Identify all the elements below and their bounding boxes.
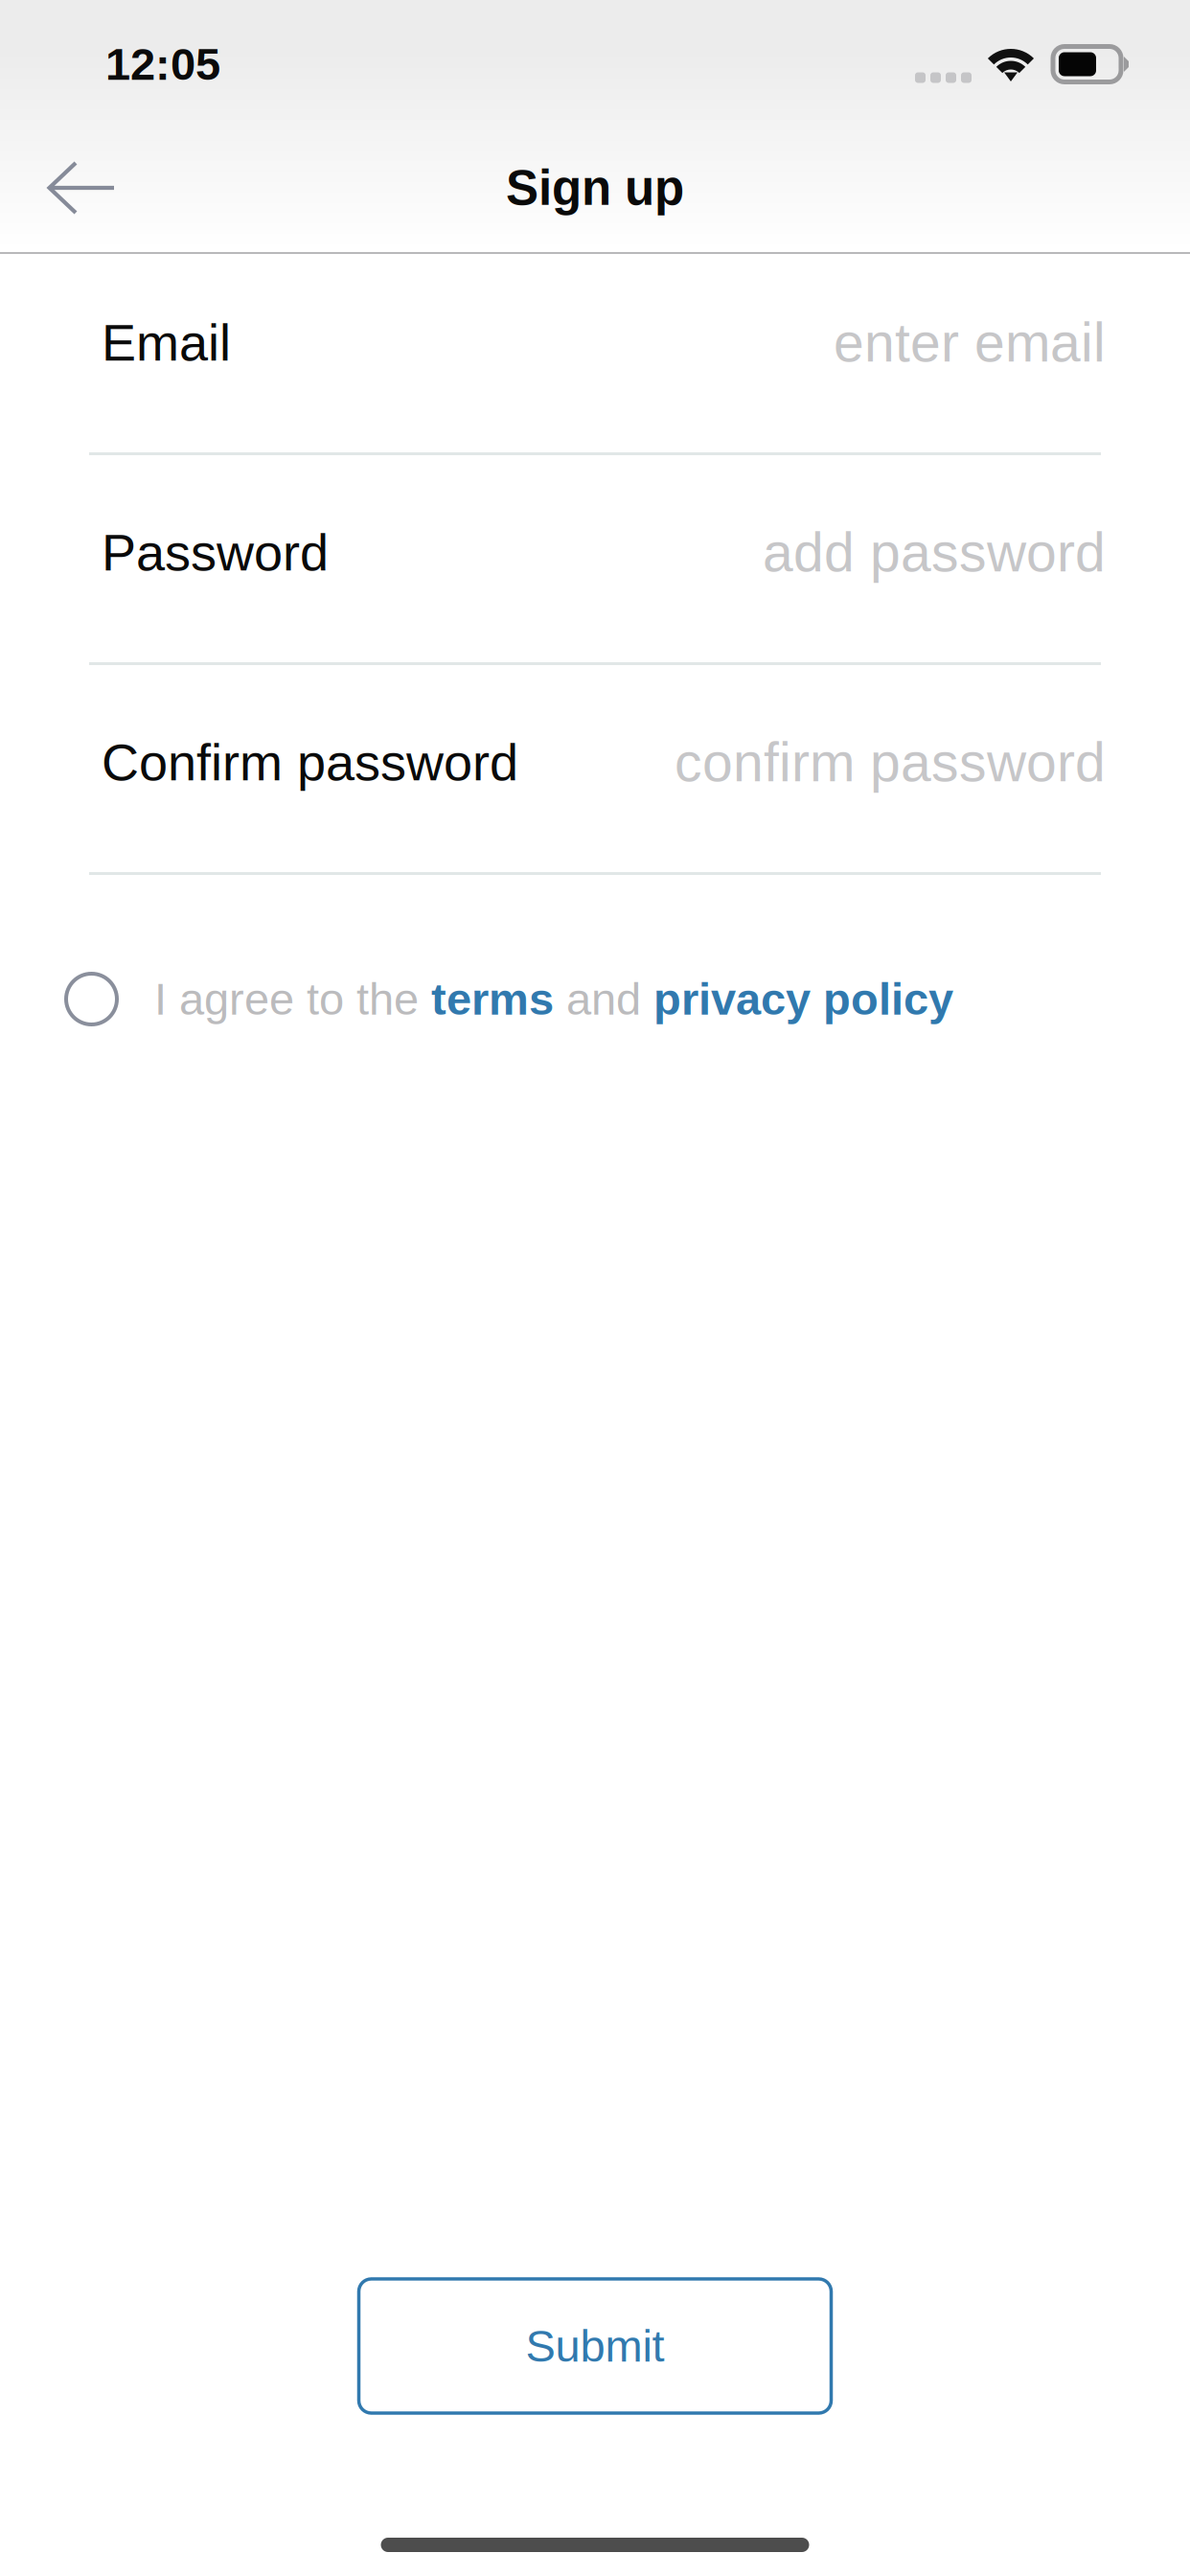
staticText: terms	[431, 974, 554, 1024]
staticText: privacy policy	[653, 974, 953, 1024]
staticText: Email	[102, 314, 231, 371]
staticText: Sign up	[506, 161, 684, 215]
button[interactable]: terms	[431, 974, 554, 1024]
staticText: Submit	[526, 2321, 664, 2371]
staticText: and	[554, 974, 653, 1024]
staticText: add password	[763, 522, 1106, 583]
staticText: confirm password	[675, 732, 1106, 793]
staticText: enter email	[834, 312, 1106, 373]
button[interactable]: Submit	[359, 2279, 831, 2413]
button[interactable]: Back	[0, 121, 163, 255]
staticText: I agree to the	[154, 974, 431, 1024]
staticText: Confirm password	[102, 733, 518, 791]
button[interactable]: Confirm password	[0, 665, 1190, 875]
button[interactable]: Email	[0, 245, 1190, 455]
button[interactable]: privacy policy	[653, 974, 953, 1024]
staticText: Password	[102, 524, 329, 581]
button[interactable]: Password	[0, 455, 1190, 665]
staticText: 12:05	[105, 39, 220, 89]
button[interactable]: I agree to the terms and privacy policy	[40, 948, 154, 1050]
